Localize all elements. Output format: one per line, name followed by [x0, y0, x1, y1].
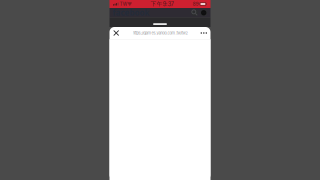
staticText: 89	[193, 1, 199, 7]
staticText: TW	[120, 1, 127, 7]
button[interactable]: Close	[111, 27, 122, 39]
button[interactable]: Messenger	[198, 9, 207, 16]
button[interactable]: Search	[191, 9, 198, 16]
staticText: https://games.yahoo.com.tw/tw2	[132, 31, 187, 35]
button[interactable]: More	[198, 27, 209, 39]
staticText: 下午9:37	[151, 0, 174, 8]
staticText: facebook	[112, 7, 149, 18]
